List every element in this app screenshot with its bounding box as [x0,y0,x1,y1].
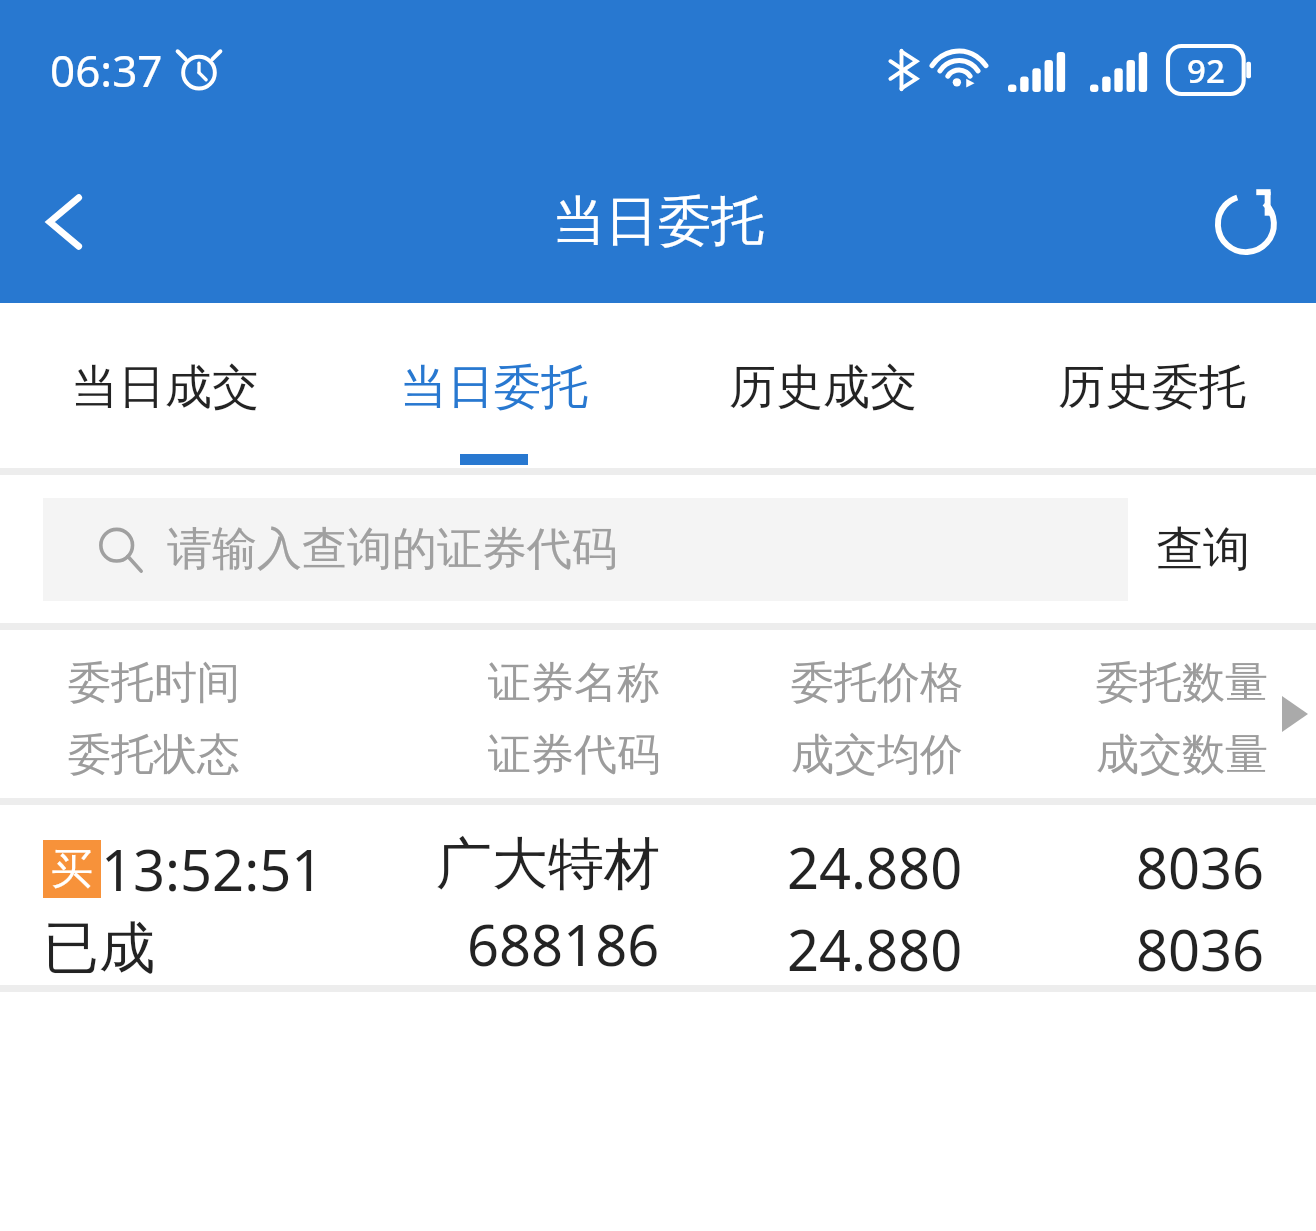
staticText: 当日委托 [552,188,764,255]
button[interactable]: Refresh [1196,170,1300,274]
staticText: 成交数量 [1096,728,1268,782]
staticText: 8036 [1136,829,1265,905]
button[interactable]: 买 [0,805,1316,985]
staticText: 历史委托 [1058,358,1246,417]
staticText: 买 [51,843,93,896]
button[interactable]: 历史委托 [987,303,1316,468]
button[interactable]: 当日成交 [0,303,329,468]
button[interactable]: 当日委托 [329,303,658,468]
staticText: 委托时间 [68,656,240,710]
button[interactable]: 请输入查询的证券代码 [43,498,1128,601]
button[interactable]: 查询 [1128,498,1278,601]
staticText: 13:52:51 [101,831,324,907]
staticText: 92 [1187,48,1225,93]
staticText: 证券名称 [488,656,660,710]
staticText: 当日成交 [71,358,259,417]
staticText: 委托数量 [1096,656,1268,710]
staticText: 委托状态 [68,728,240,782]
staticText: 当日委托 [400,358,588,417]
staticText: 历史成交 [729,358,917,417]
staticText: 委托价格 [791,656,963,710]
button[interactable]: Back [14,170,118,274]
staticText: 成交均价 [791,728,963,782]
staticText: 查询 [1156,520,1250,579]
staticText: 24.880 [787,911,963,985]
staticText: 06:37 [50,40,163,100]
staticText: 24.880 [787,829,963,905]
staticText: 证券代码 [488,728,660,782]
staticText: 已成 [43,913,155,984]
staticText: 688186 [467,906,660,982]
staticText: 请输入查询的证券代码 [167,521,617,578]
staticText: 8036 [1136,911,1265,985]
staticText: 广大特材 [436,829,660,900]
button[interactable]: 历史成交 [658,303,987,468]
